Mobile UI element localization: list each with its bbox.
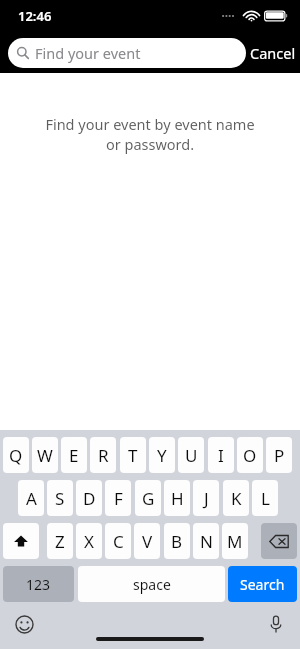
button[interactable]: F [105, 480, 131, 516]
staticText: space [133, 575, 171, 594]
staticText: G [142, 487, 155, 510]
button[interactable]: G [135, 480, 161, 516]
staticText: R [98, 444, 109, 467]
staticText: B [171, 530, 183, 553]
button[interactable]: U [178, 437, 204, 473]
button[interactable]: K [223, 480, 249, 516]
button[interactable]: Z [47, 523, 73, 559]
staticText: K [231, 487, 242, 510]
staticText: Search [240, 575, 285, 594]
staticText: C [113, 530, 124, 553]
staticText: M [227, 530, 243, 553]
button[interactable]: space [78, 566, 225, 602]
button[interactable]: O [237, 437, 263, 473]
button[interactable]: 123 [3, 566, 74, 602]
button[interactable]: A [18, 480, 44, 516]
staticText: I [218, 444, 224, 467]
button[interactable]: T [120, 437, 146, 473]
staticText: H [171, 487, 184, 510]
button[interactable]: P [266, 437, 292, 473]
staticText: V [142, 530, 153, 553]
staticText: N [200, 530, 213, 553]
staticText: D [83, 487, 96, 510]
staticText: J [204, 487, 209, 510]
button[interactable]: B [164, 523, 190, 559]
button[interactable]: M [222, 523, 248, 559]
staticText: P [274, 444, 285, 467]
button[interactable]: Y [149, 437, 175, 473]
button[interactable]: J [193, 480, 219, 516]
button[interactable]: N [193, 523, 219, 559]
staticText: U [185, 444, 198, 467]
staticText: T [128, 444, 138, 467]
button[interactable]: R [90, 437, 116, 473]
staticText: Find your event by event name or passwor… [20, 114, 280, 154]
button[interactable]: Search [228, 566, 297, 602]
button[interactable]: H [164, 480, 190, 516]
button[interactable]: Backspace [261, 523, 297, 559]
button[interactable]: E [61, 437, 87, 473]
staticText: Y [157, 444, 167, 467]
button[interactable]: S [47, 480, 73, 516]
staticText: Q [9, 444, 23, 467]
button[interactable]: I [208, 437, 234, 473]
staticText: O [243, 444, 257, 467]
staticText: S [55, 487, 65, 510]
staticText: F [114, 487, 123, 510]
staticText: E [69, 444, 79, 467]
button[interactable]: Emoji [12, 612, 36, 636]
staticText: Find your event [35, 43, 141, 63]
button[interactable]: D [76, 480, 102, 516]
staticText: 123 [26, 575, 51, 594]
staticText: W [37, 444, 53, 467]
button[interactable]: X [76, 523, 102, 559]
staticText: Z [55, 530, 65, 553]
button[interactable]: Find your event [8, 38, 246, 68]
button[interactable]: Shift [3, 523, 39, 559]
button[interactable]: V [134, 523, 160, 559]
button[interactable]: Cancel [246, 43, 300, 63]
staticText: L [261, 487, 270, 510]
staticText: 12:46 [18, 7, 52, 25]
button[interactable]: L [252, 480, 278, 516]
button[interactable]: Dictation [264, 612, 288, 636]
button[interactable]: W [32, 437, 58, 473]
staticText: A [26, 487, 37, 510]
staticText: Cancel [250, 43, 296, 63]
staticText: X [84, 530, 94, 553]
button[interactable]: Q [3, 437, 29, 473]
button[interactable]: C [105, 523, 131, 559]
